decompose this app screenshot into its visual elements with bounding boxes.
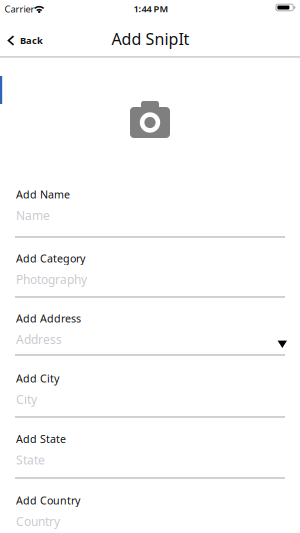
staticText: Photography — [16, 271, 87, 287]
staticText: 1:44 PM — [133, 2, 168, 15]
staticText: Address — [16, 331, 62, 347]
staticText: Add SnipIt — [111, 28, 189, 49]
button[interactable]: Name — [15, 204, 285, 230]
button[interactable]: Add Photo — [130, 101, 170, 138]
staticText: Add Country — [16, 493, 80, 507]
staticText: Name — [16, 207, 50, 223]
button[interactable]: Address — [15, 328, 285, 354]
button[interactable]: Photography — [15, 268, 285, 294]
staticText: Add State — [16, 432, 66, 446]
button[interactable]: City — [15, 388, 285, 414]
staticText: State — [16, 452, 45, 468]
staticText: Add Name — [16, 187, 70, 201]
staticText: City — [16, 391, 37, 407]
button[interactable]: Back — [7, 31, 43, 49]
staticText: Carrier — [4, 3, 34, 15]
staticText: Back — [20, 34, 43, 47]
staticText: Add Address — [16, 311, 81, 325]
button[interactable]: State — [15, 449, 285, 475]
staticText: Add Category — [16, 251, 85, 265]
staticText: Add City — [16, 371, 59, 385]
staticText: Country — [16, 513, 60, 529]
button[interactable]: Country — [15, 510, 285, 533]
